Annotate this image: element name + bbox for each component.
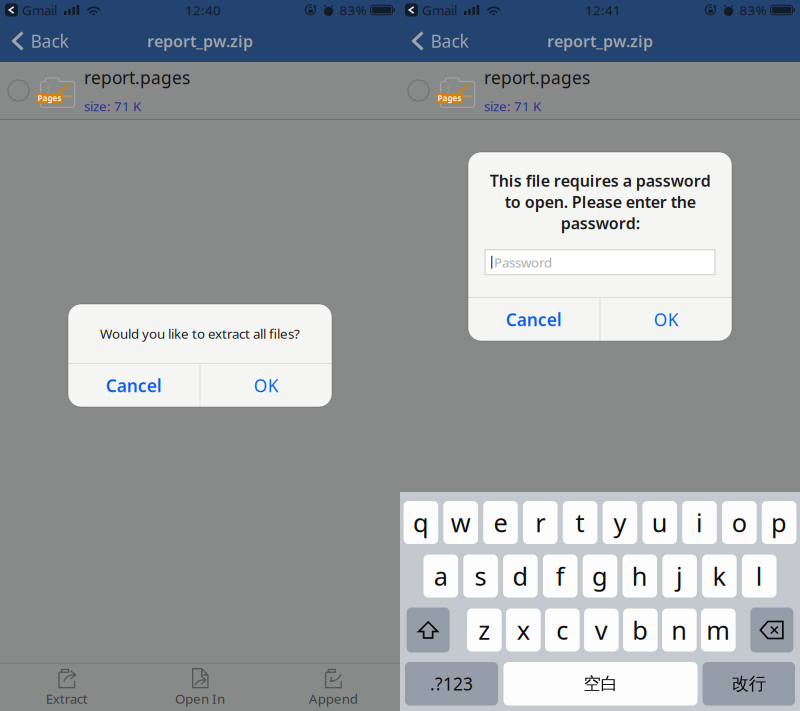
staticText: 12:40 xyxy=(185,1,221,19)
staticText: report_pw.zip xyxy=(147,30,253,52)
staticText: Pages xyxy=(37,93,61,103)
staticText: c xyxy=(556,613,568,647)
button[interactable]: OK xyxy=(600,298,732,341)
button[interactable]: u xyxy=(642,501,677,544)
button[interactable]: Cancel xyxy=(468,298,599,341)
staticText: Gmail xyxy=(422,1,457,19)
staticText: Back xyxy=(30,29,68,52)
button[interactable]: Back xyxy=(0,23,76,58)
staticText: size: 71 K xyxy=(84,97,141,115)
staticText: o xyxy=(732,506,747,539)
button[interactable]: q xyxy=(404,501,438,544)
staticText: Append xyxy=(309,690,358,707)
staticText: 空白 xyxy=(583,673,617,694)
button[interactable]: x xyxy=(506,608,541,651)
staticText: Back xyxy=(430,29,468,52)
staticText: i xyxy=(696,506,703,539)
staticText: h xyxy=(632,559,648,593)
staticText: .?123 xyxy=(430,672,473,695)
button[interactable]: y xyxy=(603,501,637,544)
staticText: 83% xyxy=(740,1,767,19)
button[interactable]: a xyxy=(423,554,458,597)
staticText: j xyxy=(676,559,683,593)
button[interactable]: z xyxy=(467,608,502,651)
button[interactable]: g xyxy=(583,554,617,597)
staticText: This file requires a password to open. P… xyxy=(489,170,710,234)
staticText: p xyxy=(771,506,787,539)
staticText: 改行 xyxy=(732,673,766,694)
staticText: w xyxy=(451,506,471,539)
staticText: OK xyxy=(654,308,679,331)
staticText: g xyxy=(592,559,608,593)
staticText: report_pw.zip xyxy=(547,30,653,52)
button[interactable]: Open In xyxy=(133,664,267,711)
staticText: l xyxy=(756,559,763,593)
staticText: Cancel xyxy=(106,374,162,397)
staticText: size: 71 K xyxy=(484,97,541,115)
button[interactable]: OK xyxy=(200,364,332,407)
button[interactable]: v xyxy=(584,608,619,651)
staticText: Pages xyxy=(437,93,461,103)
button[interactable]: p xyxy=(762,501,796,544)
staticText: n xyxy=(671,613,687,647)
staticText: a xyxy=(434,559,448,593)
staticText: OK xyxy=(254,374,279,397)
button[interactable]: Extract xyxy=(0,664,133,711)
button[interactable]: o xyxy=(722,501,757,544)
staticText: b xyxy=(632,613,648,647)
staticText: r xyxy=(535,506,545,539)
staticText: s xyxy=(475,559,487,593)
staticText: Open In xyxy=(175,690,225,707)
staticText: y xyxy=(613,506,626,539)
staticText: f xyxy=(556,559,565,593)
button[interactable]: Delete xyxy=(750,607,793,652)
button[interactable]: l xyxy=(742,554,776,597)
button[interactable]: Shift xyxy=(407,607,450,652)
staticText: m xyxy=(706,613,730,647)
staticText: Cancel xyxy=(506,308,562,331)
staticText: q xyxy=(413,506,429,539)
button[interactable]: w xyxy=(443,501,478,544)
staticText: k xyxy=(712,559,726,593)
staticText: u xyxy=(652,506,668,539)
button[interactable]: i xyxy=(682,501,717,544)
staticText: Gmail xyxy=(22,1,57,19)
staticText: z xyxy=(478,613,490,647)
button[interactable]: n xyxy=(662,608,697,651)
staticText: v xyxy=(595,613,608,647)
staticText: report.pages xyxy=(484,66,590,89)
staticText: 83% xyxy=(340,1,367,19)
button[interactable]: Cancel xyxy=(68,364,199,407)
staticText: d xyxy=(512,559,528,593)
button[interactable]: m xyxy=(701,608,736,651)
button[interactable]: Back xyxy=(400,23,476,58)
button[interactable]: Pages xyxy=(0,62,400,119)
button[interactable]: k xyxy=(702,554,737,597)
button[interactable]: r xyxy=(523,501,558,544)
button[interactable]: t xyxy=(563,501,597,544)
button[interactable]: f xyxy=(543,554,577,597)
button[interactable]: Append xyxy=(267,664,400,711)
button[interactable]: c xyxy=(545,608,580,651)
staticText: Would you like to extract all files? xyxy=(100,325,300,342)
staticText: Extract xyxy=(46,690,88,707)
staticText: Password xyxy=(494,253,552,271)
staticText: x xyxy=(517,613,530,647)
button[interactable]: Pages xyxy=(400,62,800,119)
button[interactable]: e xyxy=(483,501,518,544)
button[interactable]: s xyxy=(463,554,498,597)
button[interactable]: h xyxy=(622,554,657,597)
staticText: 12:41 xyxy=(585,1,621,19)
button[interactable]: j xyxy=(662,554,697,597)
button[interactable]: d xyxy=(503,554,538,597)
button[interactable]: b xyxy=(623,608,658,651)
button[interactable]: .?123 xyxy=(405,662,498,705)
staticText: t xyxy=(576,506,585,539)
button[interactable]: 空白 xyxy=(503,662,697,705)
staticText: report.pages xyxy=(84,66,190,89)
button[interactable]: 改行 xyxy=(702,662,795,705)
staticText: e xyxy=(493,506,507,539)
